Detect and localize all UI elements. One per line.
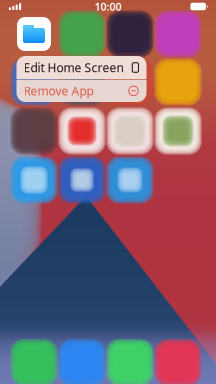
staticText: Edit Home Screen <box>23 59 123 75</box>
button[interactable]: Remove App <box>16 80 146 102</box>
staticText: 10:00 <box>94 0 121 14</box>
button[interactable]: Files <box>17 17 51 51</box>
button[interactable]: Edit Home Screen <box>16 56 146 79</box>
staticText: Remove App <box>23 83 93 99</box>
